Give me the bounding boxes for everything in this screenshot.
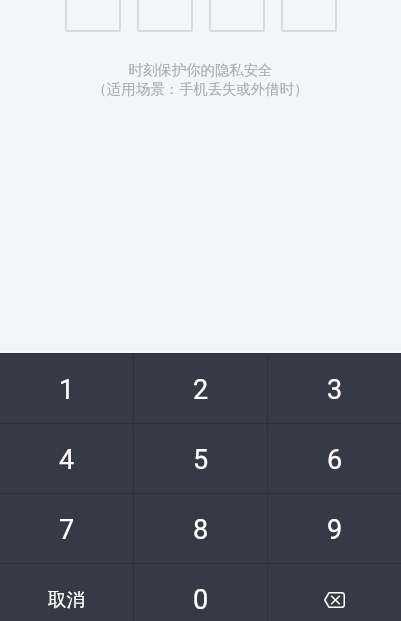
staticText: 1: [59, 374, 75, 406]
button[interactable]: 4: [0, 425, 133, 494]
button[interactable]: Backspace: [268, 565, 401, 621]
other: Backspace: [324, 592, 345, 608]
staticText: 8: [193, 514, 209, 546]
button[interactable]: 取消: [0, 565, 133, 621]
button[interactable]: 0: [134, 565, 267, 621]
staticText: 6: [327, 444, 343, 476]
button[interactable]: 7: [0, 495, 133, 564]
staticText: 0: [193, 584, 209, 616]
button[interactable]: 1: [0, 355, 133, 424]
staticText: 9: [327, 514, 343, 546]
staticText: 2: [193, 374, 209, 406]
button[interactable]: 8: [134, 495, 267, 564]
staticText: 5: [193, 444, 209, 476]
staticText: 取消: [48, 588, 85, 611]
staticText: 3: [327, 374, 343, 406]
button[interactable]: 5: [134, 425, 267, 494]
staticText: 时刻保护你的隐私安全 （适用场景：手机丢失或外借时）: [0, 61, 401, 98]
button[interactable]: 2: [134, 355, 267, 424]
button[interactable]: 6: [268, 425, 401, 494]
staticText: 4: [59, 444, 75, 476]
button[interactable]: 3: [268, 355, 401, 424]
staticText: 7: [59, 514, 75, 546]
button[interactable]: 9: [268, 495, 401, 564]
